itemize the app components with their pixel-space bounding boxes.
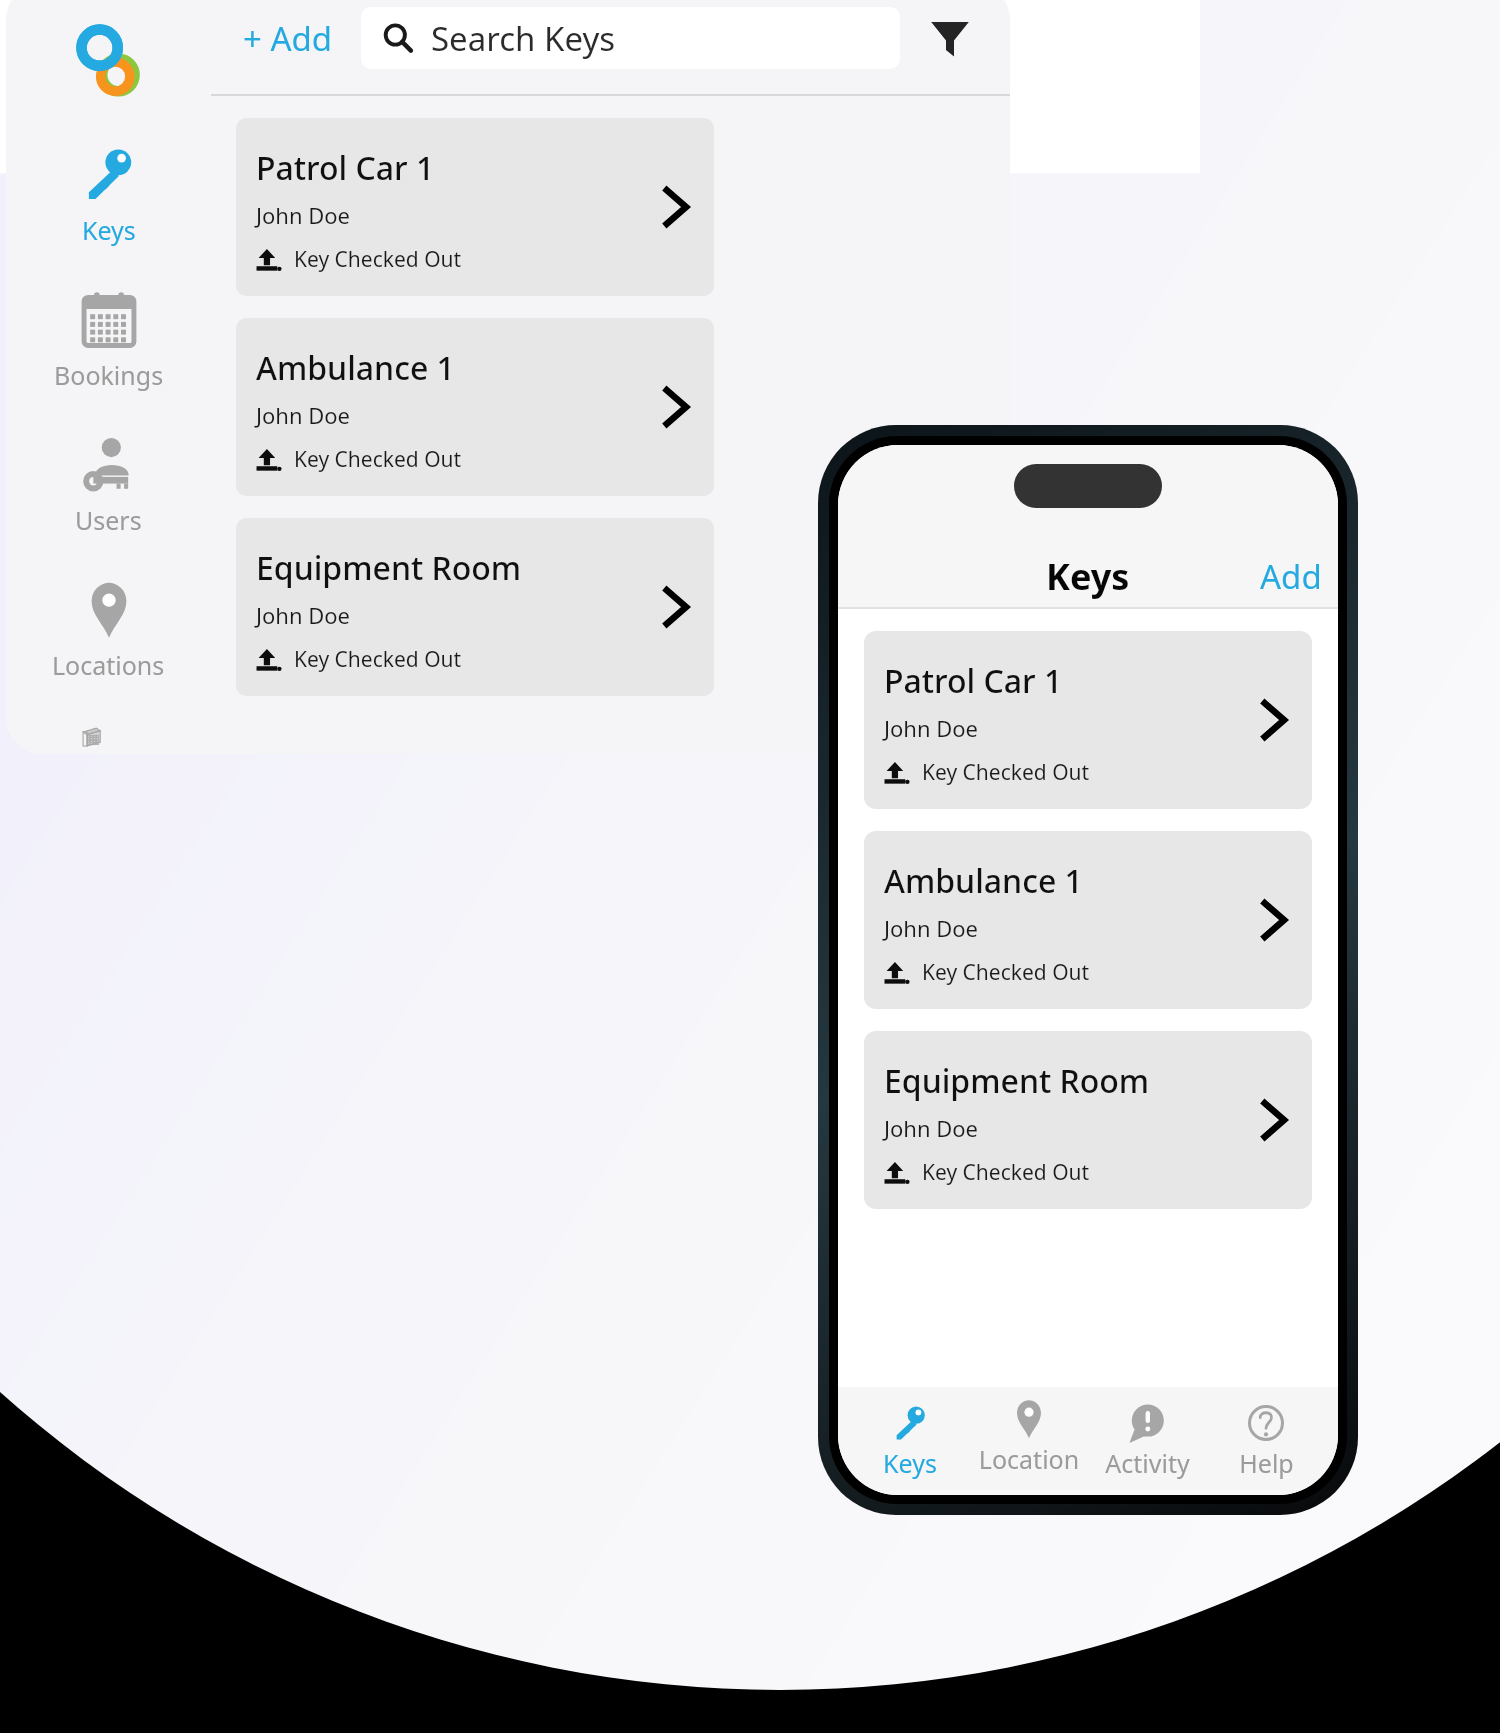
button[interactable]: Patrol Car 1 — [236, 118, 714, 296]
button[interactable]: Ambulance 1 — [236, 318, 714, 496]
staticText: Keys — [883, 1446, 937, 1480]
button[interactable]: SmartBoxes — [6, 720, 211, 754]
staticText: + Add — [243, 16, 333, 61]
staticText: Key Checked Out — [294, 645, 462, 674]
staticText: Keys — [82, 213, 136, 247]
staticText: Keys — [1046, 552, 1130, 601]
staticText: Key Checked Out — [922, 958, 1090, 987]
staticText: Key Checked Out — [922, 758, 1090, 787]
other: Open Equipment Room — [1253, 1099, 1295, 1141]
button[interactable]: Keys — [855, 1403, 965, 1480]
staticText: John Doe — [256, 400, 351, 430]
staticText: Key Checked Out — [294, 445, 462, 474]
other: Open Patrol Car 1 — [655, 186, 697, 228]
button[interactable]: Equipment Room — [236, 518, 714, 696]
staticText: Equipment Room — [256, 546, 522, 590]
other: Open Patrol Car 1 — [1253, 699, 1295, 741]
other: Open Ambulance 1 — [1253, 899, 1295, 941]
button[interactable]: Patrol Car 1 — [864, 631, 1312, 809]
button[interactable]: Keys — [6, 138, 211, 253]
button[interactable]: Add — [1244, 554, 1338, 599]
button[interactable]: Equipment Room — [864, 1031, 1312, 1209]
button[interactable]: Help — [1211, 1403, 1321, 1480]
button[interactable]: Locations — [974, 1399, 1084, 1483]
staticText: Patrol Car 1 — [884, 659, 1063, 703]
staticText: Help — [1239, 1446, 1294, 1480]
staticText: John Doe — [256, 600, 351, 630]
staticText: Patrol Car 1 — [256, 146, 435, 190]
staticText: Key Checked Out — [294, 245, 462, 274]
button[interactable]: Bookings — [6, 285, 211, 398]
staticText: John Doe — [884, 713, 979, 743]
staticText: Search Keys — [431, 16, 616, 61]
button[interactable]: Locations — [6, 575, 211, 688]
button[interactable]: Search Keys — [361, 7, 900, 69]
staticText: Ambulance 1 — [256, 346, 455, 390]
button[interactable]: + Add — [237, 10, 339, 67]
button[interactable]: Activity — [1092, 1403, 1202, 1480]
other: Filter — [930, 18, 970, 58]
staticText: John Doe — [884, 913, 979, 943]
staticText: Equipment Room — [884, 1059, 1150, 1103]
staticText: Add — [1260, 554, 1322, 599]
other: Open Equipment Room — [655, 586, 697, 628]
staticText: Locations — [52, 648, 165, 682]
button[interactable]: Ambulance 1 — [864, 831, 1312, 1009]
staticText: Key Checked Out — [922, 1158, 1090, 1187]
staticText: John Doe — [256, 200, 351, 230]
staticText: Activity — [1105, 1446, 1190, 1480]
staticText: Bookings — [54, 358, 164, 392]
staticText: John Doe — [884, 1113, 979, 1143]
other: Logo — [70, 22, 148, 100]
button[interactable]: Users — [6, 430, 211, 543]
other: Open Ambulance 1 — [655, 386, 697, 428]
staticText: Ambulance 1 — [884, 859, 1083, 903]
staticText: Users — [75, 503, 142, 537]
staticText: Locations — [974, 1442, 1084, 1483]
